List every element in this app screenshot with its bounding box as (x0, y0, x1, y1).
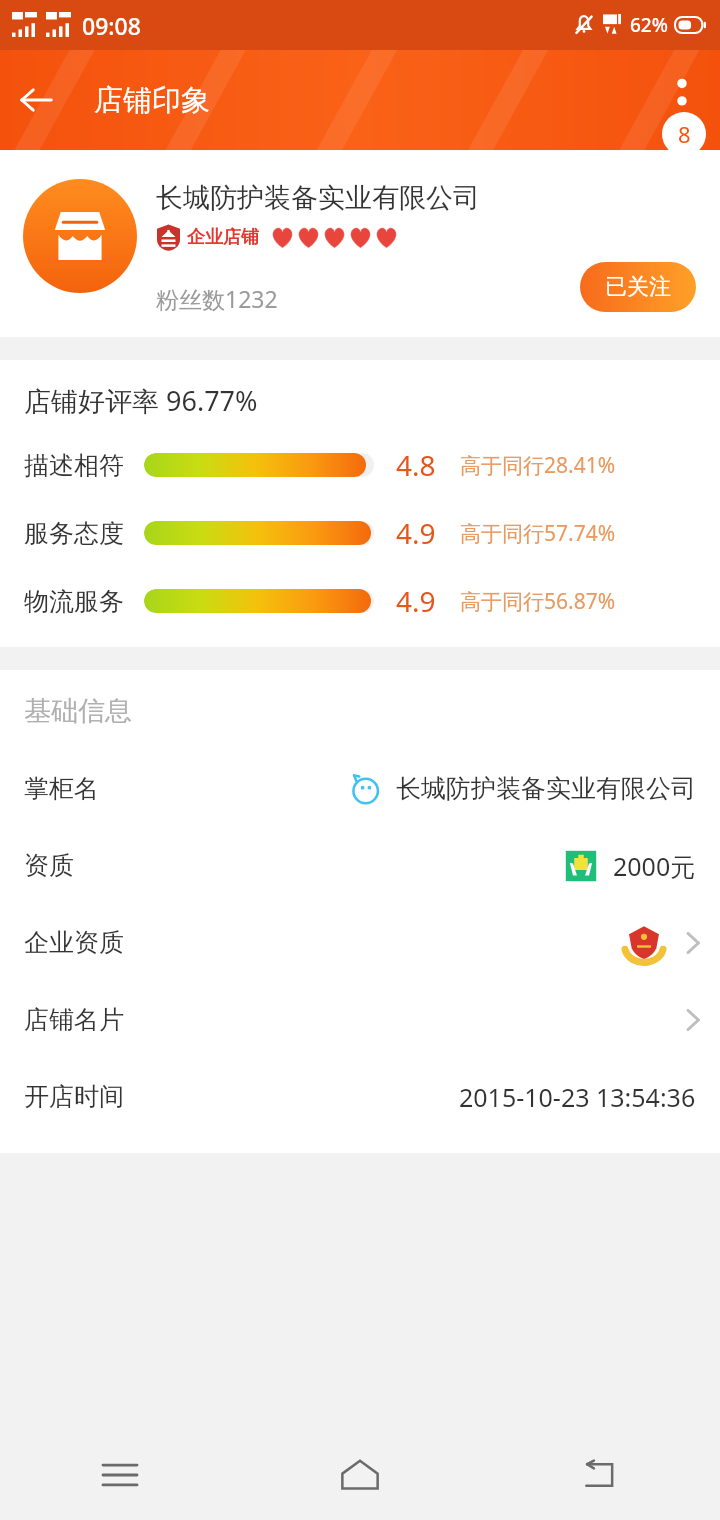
button[interactable]: 资质 (0, 827, 720, 904)
staticText: 高于同行57.74% (460, 519, 616, 548)
staticText: 店铺印象 (94, 82, 210, 119)
staticText: 4.8 (396, 446, 436, 484)
staticText: 长城防护装备实业有限公司 (396, 773, 696, 804)
button[interactable]: Back (0, 64, 72, 136)
button[interactable]: Recent apps (0, 1430, 240, 1520)
button[interactable]: 企业资质 (0, 904, 720, 981)
staticText: 店铺好评率 96.77% (24, 382, 258, 419)
button[interactable]: 描述相符 (0, 445, 720, 485)
button[interactable]: 开店时间 (0, 1058, 720, 1135)
button[interactable]: 服务态度 (0, 513, 720, 553)
button[interactable]: 掌柜名 (0, 750, 720, 827)
staticText: 62% (630, 12, 668, 38)
staticText: 4.9 (396, 514, 436, 552)
staticText: 物流服务 (24, 586, 124, 617)
staticText: 2015-10-23 13:54:36 (459, 1080, 696, 1114)
staticText: 高于同行28.41% (460, 451, 616, 480)
button[interactable]: More options (644, 50, 720, 150)
staticText: 长城防护装备实业有限公司 (156, 181, 480, 215)
staticText: 基础信息 (24, 694, 132, 728)
staticText: 粉丝数1232 (156, 283, 278, 314)
staticText: 服务态度 (24, 518, 124, 549)
staticText: 开店时间 (24, 1081, 124, 1112)
button[interactable]: Shop avatar (23, 179, 137, 293)
staticText: 4.9 (396, 582, 436, 620)
button[interactable]: 店铺名片 (0, 981, 720, 1058)
staticText: 高于同行56.87% (460, 587, 616, 616)
button[interactable]: 物流服务 (0, 581, 720, 621)
staticText: 资质 (24, 850, 74, 881)
staticText: 已关注 (605, 273, 671, 301)
staticText: 企业资质 (24, 927, 124, 958)
staticText: 2000元 (613, 849, 696, 883)
staticText: 09:08 (82, 10, 141, 41)
button[interactable]: Home (240, 1430, 480, 1520)
staticText: 店铺名片 (24, 1004, 124, 1035)
staticText: 掌柜名 (24, 773, 99, 804)
staticText: 8 (678, 119, 691, 149)
button[interactable]: Back (480, 1430, 720, 1520)
staticText: 描述相符 (24, 450, 124, 481)
button[interactable]: 已关注 (580, 262, 696, 312)
staticText: 企业店铺 (187, 226, 259, 249)
